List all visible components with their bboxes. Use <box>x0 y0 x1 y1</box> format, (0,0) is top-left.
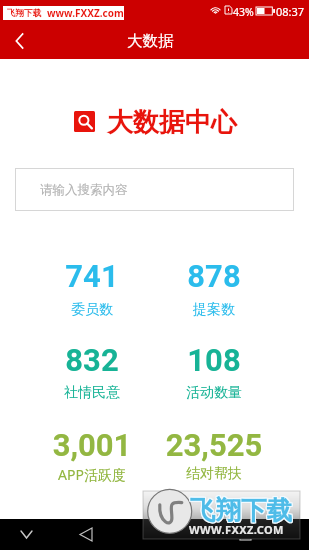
staticText: 飞翔下载 <box>191 494 293 526</box>
staticText: 飞翔下载 <box>190 495 292 527</box>
staticText: 结对帮扶 <box>139 465 289 483</box>
button[interactable]: 832 <box>17 342 167 406</box>
button[interactable]: Recents <box>229 519 261 550</box>
staticText: www.FXXZ.com <box>47 6 124 20</box>
staticText: 飞翔下载 <box>189 494 291 526</box>
button[interactable]: 23,525 <box>139 427 289 487</box>
staticText: 大数据中心 <box>107 106 237 139</box>
staticText: 832 <box>17 342 167 378</box>
staticText: 飞翔下载 <box>191 495 293 527</box>
button[interactable]: Home <box>70 519 102 550</box>
staticText: 108 <box>139 342 289 378</box>
staticText: 08:37 <box>276 4 305 19</box>
staticText: 43% <box>233 5 254 19</box>
staticText: 大数据 <box>127 31 174 51</box>
staticText: WWW.FXXZ.COM <box>189 522 284 537</box>
staticText: 23,525 <box>139 427 289 463</box>
staticText: 741 <box>17 258 167 294</box>
staticText: 飞翔下载 <box>189 495 291 527</box>
staticText: 飞翔下载 <box>189 493 291 525</box>
staticText: 飞翔下载 <box>190 493 292 525</box>
button[interactable]: Big data centre <box>74 111 95 132</box>
staticText: 活动数量 <box>139 384 289 402</box>
staticText: 飞翔下载 <box>190 494 292 526</box>
staticText: 3,001 <box>17 427 167 463</box>
staticText: 请输入搜索内容 <box>40 182 128 198</box>
button[interactable]: 741 <box>17 258 167 323</box>
staticText: APP活跃度 <box>17 465 167 484</box>
button[interactable]: Back <box>0 22 38 59</box>
staticText: 委员数 <box>17 301 167 319</box>
staticText: 飞翔下载 <box>7 8 42 19</box>
staticText: 社情民意 <box>17 384 167 402</box>
button[interactable]: 3,001 <box>17 427 167 487</box>
button[interactable]: Back <box>10 519 42 550</box>
staticText: 飞翔下载 <box>191 493 293 525</box>
button[interactable]: 878 <box>139 258 289 323</box>
staticText: 提案数 <box>139 301 289 319</box>
button[interactable]: 请输入搜索内容 <box>15 168 294 211</box>
button[interactable]: 108 <box>139 342 289 406</box>
staticText: 878 <box>139 258 289 294</box>
